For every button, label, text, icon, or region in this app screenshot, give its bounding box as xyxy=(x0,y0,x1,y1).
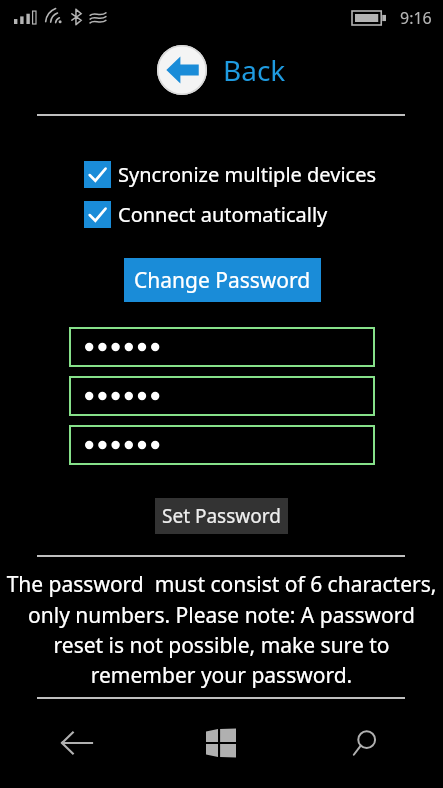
staticText: The password must consist of 6 character… xyxy=(6,570,437,689)
button[interactable]: Password field 3 xyxy=(69,425,375,465)
button[interactable]: Start xyxy=(184,718,258,768)
staticText: Change Password xyxy=(134,266,311,295)
button[interactable]: Password field 1 xyxy=(69,327,375,367)
other: Back xyxy=(157,45,207,95)
button[interactable]: Search xyxy=(328,718,402,768)
button[interactable]: Set Password xyxy=(155,498,288,534)
button[interactable]: Syncronize multiple devices xyxy=(84,160,376,188)
button[interactable]: Connect automatically xyxy=(84,200,328,228)
staticText: Set Password xyxy=(162,503,281,529)
staticText: Connect automatically xyxy=(118,201,328,228)
button[interactable]: Change Password xyxy=(124,258,321,302)
button[interactable]: Password field 2 xyxy=(69,376,375,416)
staticText: Syncronize multiple devices xyxy=(118,161,376,188)
staticText: Back xyxy=(223,51,286,89)
button[interactable]: Back xyxy=(0,45,443,95)
staticText: 9:16 xyxy=(400,7,432,29)
button[interactable]: Back xyxy=(40,718,114,768)
